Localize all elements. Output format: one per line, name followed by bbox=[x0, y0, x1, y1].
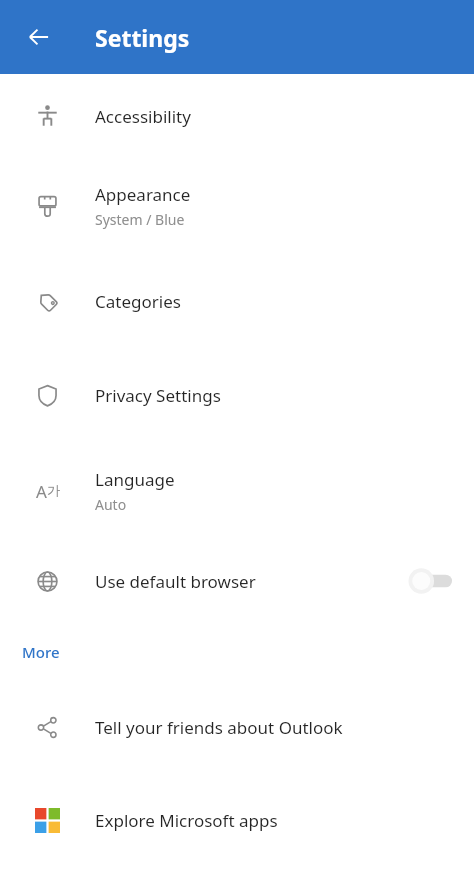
staticText: 가 bbox=[47, 482, 60, 498]
button[interactable]: Appearance bbox=[0, 158, 474, 254]
button[interactable]: Use default browser bbox=[0, 539, 474, 623]
button[interactable]: A bbox=[0, 443, 474, 539]
button[interactable]: Back bbox=[18, 16, 60, 58]
staticText: Settings bbox=[95, 22, 190, 53]
button[interactable]: Explore Microsoft apps bbox=[0, 773, 474, 868]
staticText: Accessibility bbox=[95, 105, 191, 128]
staticText: Explore Microsoft apps bbox=[95, 809, 278, 832]
staticText: Language bbox=[95, 468, 175, 491]
button[interactable]: Categories bbox=[0, 254, 474, 348]
staticText: Tell your friends about Outlook bbox=[95, 716, 343, 739]
staticText: Privacy Settings bbox=[95, 384, 221, 407]
button[interactable]: Tell your friends about Outlook bbox=[0, 681, 474, 773]
staticText: More bbox=[22, 642, 60, 662]
staticText: Use default browser bbox=[95, 570, 256, 593]
staticText: Categories bbox=[95, 290, 181, 313]
staticText: A bbox=[36, 480, 47, 503]
staticText: System / Blue bbox=[95, 210, 185, 229]
button[interactable]: Accessibility bbox=[0, 74, 474, 158]
button[interactable]: Privacy Settings bbox=[0, 348, 474, 443]
staticText: Appearance bbox=[95, 183, 191, 206]
staticText: Auto bbox=[95, 495, 127, 514]
